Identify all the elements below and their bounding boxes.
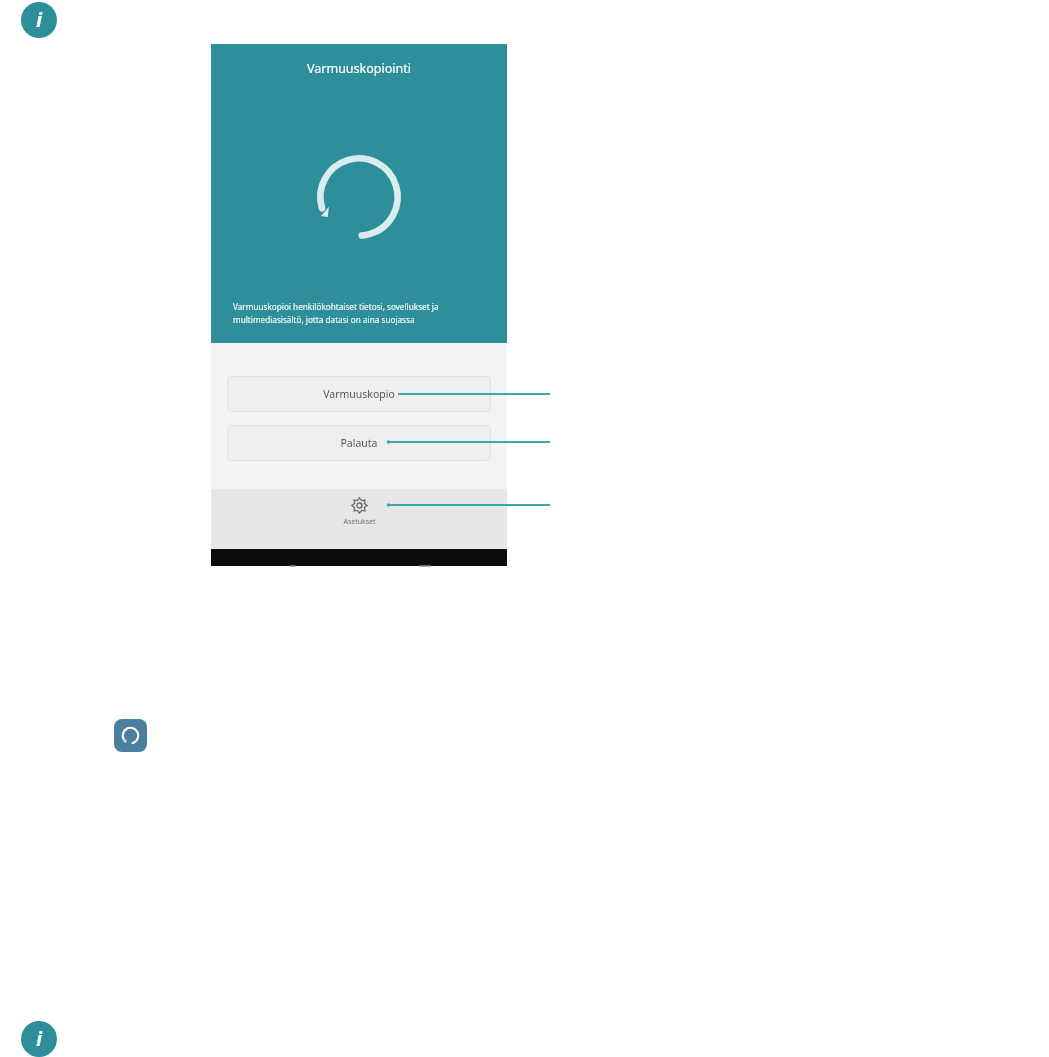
button[interactable]: Palauta [227,425,491,461]
staticText: i [36,7,42,33]
button[interactable]: Information [21,2,57,38]
staticText: multimediasisältö, jotta datasi on aina … [233,314,415,325]
button[interactable]: Information [21,1021,57,1057]
staticText: Varmuuskopioi henkilökohtaiset tietosi, … [233,301,439,312]
staticText: Varmuuskopio [323,387,395,401]
staticText: Palauta [340,436,378,450]
staticText: Varmuuskopiointi [211,60,507,77]
button[interactable]: Asetukset [211,489,507,549]
staticText: i [36,1026,42,1052]
button[interactable]: Varmuuskopio [227,376,491,412]
staticText: Asetukset [343,517,376,527]
button[interactable]: Backup app icon [114,719,147,752]
